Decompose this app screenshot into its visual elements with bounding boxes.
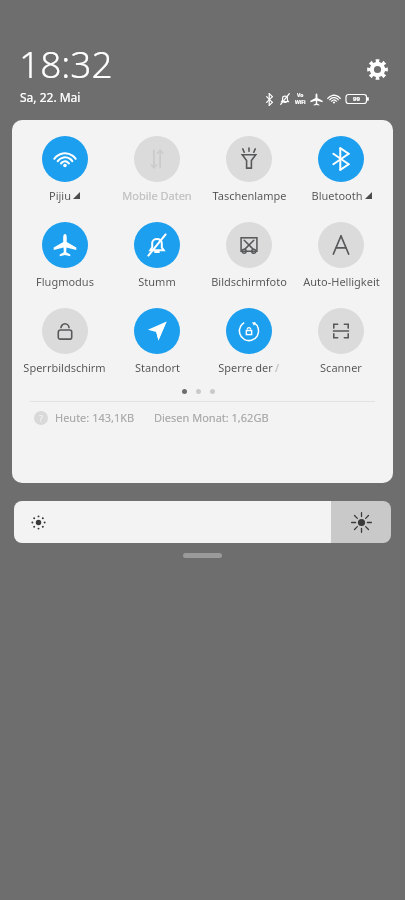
staticText: Taschenlampe <box>212 188 287 203</box>
button[interactable]: Auto-Helligkeit <box>295 220 387 291</box>
staticText: 18:32 <box>19 38 113 88</box>
button[interactable]: Sperrbildschirm <box>18 306 111 377</box>
staticText: Mobile Daten <box>122 188 192 203</box>
staticText: Bildschirmfoto <box>211 274 287 289</box>
button[interactable]: Brightness <box>14 501 331 543</box>
button[interactable]: Flugmodus <box>18 220 111 291</box>
staticText: Pijiu <box>49 188 71 203</box>
staticText: Stumm <box>138 274 176 289</box>
staticText: 99 <box>353 95 360 103</box>
staticText: Diesen Monat: 1,62GB <box>154 410 269 425</box>
button[interactable]: Auto brightness <box>331 501 391 543</box>
button[interactable]: Bildschirmfoto <box>203 220 295 291</box>
staticText: Sa, 22. Mai <box>20 89 81 105</box>
staticText: Sperre der <box>218 360 273 375</box>
staticText: Scanner <box>320 360 362 375</box>
staticText: / <box>275 360 280 375</box>
button[interactable]: Pijiu <box>18 134 111 205</box>
staticText: Bluetooth <box>311 188 363 203</box>
staticText: WiFi <box>295 99 306 106</box>
button[interactable]: Bluetooth <box>295 134 387 205</box>
staticText: ? <box>39 412 43 424</box>
button[interactable]: Standort <box>111 306 203 377</box>
staticText: Vo <box>297 92 304 99</box>
staticText: Flugmodus <box>36 274 94 289</box>
button[interactable]: Mobile Daten <box>111 134 203 205</box>
staticText: Heute: 143,1KB <box>55 410 135 425</box>
staticText: Auto-Helligkeit <box>303 274 380 289</box>
button[interactable]: Stumm <box>111 220 203 291</box>
button[interactable]: Taschenlampe <box>203 134 295 205</box>
staticText: Standort <box>135 360 180 375</box>
button[interactable]: Sperre der <box>203 306 295 377</box>
button[interactable]: Settings <box>360 52 394 86</box>
staticText: Sperrbildschirm <box>23 360 106 375</box>
button[interactable]: Scanner <box>295 306 387 377</box>
